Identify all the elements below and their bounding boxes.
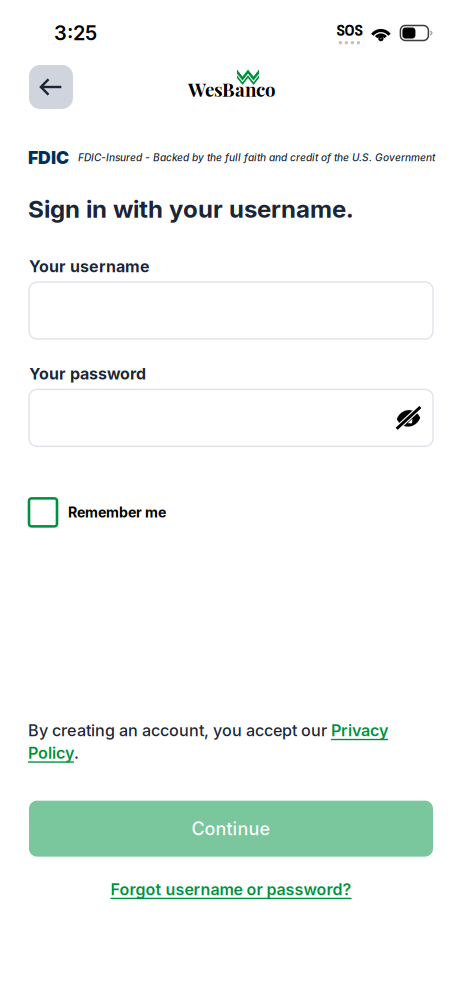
staticText: WesBanco bbox=[188, 77, 276, 101]
button[interactable]: Forgot username or password? bbox=[0, 880, 462, 899]
staticText: . bbox=[74, 743, 79, 763]
button[interactable]: Remember me bbox=[29, 498, 166, 526]
staticText: Policy bbox=[28, 743, 74, 763]
staticText: 3:25 bbox=[54, 21, 97, 45]
button[interactable]: Privacy bbox=[331, 721, 388, 740]
staticText: By creating an account, you accept our bbox=[28, 721, 331, 740]
staticText: Forgot username or password? bbox=[110, 880, 351, 899]
staticText: Continue bbox=[191, 818, 270, 840]
button[interactable]: Show password bbox=[396, 407, 433, 428]
staticText: Sign in with your username. bbox=[28, 194, 354, 224]
staticText: Your password bbox=[29, 364, 146, 383]
staticText: FDIC-Insured - Backed by the full faith … bbox=[78, 151, 435, 164]
staticText: Remember me bbox=[68, 504, 166, 521]
button[interactable]: Back bbox=[29, 65, 73, 109]
button[interactable]: Policy bbox=[28, 743, 74, 763]
staticText: Privacy bbox=[331, 721, 388, 740]
staticText: Your username bbox=[29, 257, 150, 276]
staticText: SOS bbox=[336, 22, 362, 39]
button[interactable]: Continue bbox=[29, 801, 433, 857]
staticText: FDIC bbox=[28, 147, 69, 168]
